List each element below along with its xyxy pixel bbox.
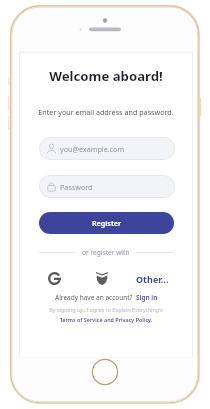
- staticText: or register with: [82, 248, 130, 257]
- button[interactable]: you@example.com: [39, 137, 175, 160]
- staticText: Password: [60, 182, 93, 192]
- staticText: Already have an account?: [55, 293, 133, 302]
- staticText: Enter your email address and password.: [20, 107, 192, 117]
- button[interactable]: Terms of Service and Privacy Policy.: [20, 316, 192, 323]
- button[interactable]: Sign up with Microsoft: [96, 272, 108, 285]
- staticText: By signing up, I agree to Explain Everyt…: [20, 306, 192, 313]
- button[interactable]: Password: [39, 175, 175, 198]
- staticText: Other...: [136, 273, 169, 285]
- button[interactable]: Register: [39, 212, 174, 234]
- staticText: you@example.com: [60, 144, 125, 154]
- staticText: Register: [92, 218, 122, 228]
- staticText: Welcome aboard!: [20, 67, 192, 85]
- button[interactable]: Sign up with Google: [48, 272, 61, 285]
- button[interactable]: Other...: [136, 271, 172, 286]
- button[interactable]: Sign in: [136, 293, 158, 302]
